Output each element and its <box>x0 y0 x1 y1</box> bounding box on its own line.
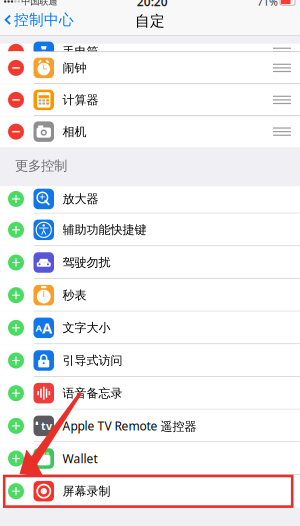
staticText: 辅助功能快捷键 <box>62 222 146 237</box>
button[interactable]: 驾驶勿扰 <box>0 246 300 279</box>
staticText: tv <box>41 419 52 433</box>
staticText: 引导式访问 <box>62 353 122 368</box>
staticText: A <box>35 322 41 334</box>
staticText: 中国联通 <box>21 0 57 7</box>
button[interactable]: A <box>0 311 300 344</box>
staticText: 驾驶勿扰 <box>62 255 110 270</box>
button[interactable]: 辅助功能快捷键 <box>0 213 300 246</box>
staticText: 计算器 <box>62 92 98 107</box>
staticText: 语音备忘录 <box>62 386 122 400</box>
staticText: 控制中心 <box>14 11 74 29</box>
button[interactable]: 相机 <box>0 116 300 147</box>
staticText: 相机 <box>62 124 86 139</box>
staticText: 手电筒 <box>62 44 98 59</box>
staticText: 闹钟 <box>62 60 86 75</box>
button[interactable]: tv <box>0 409 300 442</box>
button[interactable]: 计算器 <box>0 84 300 116</box>
staticText: 71% <box>257 0 278 9</box>
button[interactable]: 屏幕录制 <box>0 475 300 508</box>
staticText: 20:20 <box>137 0 168 9</box>
button[interactable]: 手电筒 <box>0 35 300 52</box>
button[interactable]: 闹钟 <box>0 52 300 84</box>
staticText: A <box>42 318 52 338</box>
button[interactable]: 放大器 <box>0 184 300 213</box>
staticText: 放大器 <box>62 192 98 206</box>
staticText: 自定 <box>135 12 165 30</box>
button[interactable]: Wallet <box>0 442 300 475</box>
staticText: 文字大小 <box>62 320 110 335</box>
staticText: 屏幕录制 <box>62 484 110 498</box>
staticText: Apple TV Remote 遥控器 <box>62 418 196 434</box>
button[interactable]: 控制中心 <box>0 10 74 32</box>
staticText: Wallet <box>62 451 97 466</box>
button[interactable]: 引导式访问 <box>0 344 300 377</box>
staticText: 更多控制 <box>15 158 67 174</box>
staticText: 秒表 <box>62 288 86 302</box>
button[interactable]: 秒表 <box>0 279 300 311</box>
button[interactable]: 语音备忘录 <box>0 377 300 410</box>
